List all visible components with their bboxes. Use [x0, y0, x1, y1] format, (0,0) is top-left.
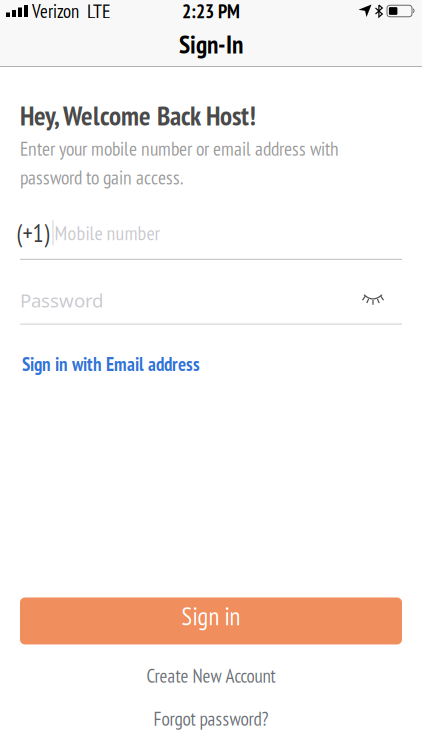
staticText: Forgot password?: [153, 706, 268, 731]
button[interactable]: Sign in with Email address: [0, 352, 200, 376]
staticText: Password: [20, 288, 103, 313]
staticText: Sign in: [181, 600, 240, 632]
staticText: Sign in with Email address: [22, 352, 200, 376]
staticText: Hey, Welcome Back Host!: [20, 98, 256, 133]
staticText: 2:23 PM: [182, 0, 240, 23]
staticText: Sign-In: [179, 28, 243, 60]
staticText: Create New Account: [146, 663, 275, 688]
staticText: Enter your mobile number or email addres…: [20, 136, 339, 190]
button[interactable]: Create New Account: [0, 663, 422, 688]
button[interactable]: Forgot password?: [0, 706, 422, 731]
button[interactable]: (+1): [0, 217, 422, 260]
staticText: Verizon: [32, 0, 79, 23]
staticText: LTE: [87, 0, 111, 24]
staticText: Mobile number: [54, 220, 159, 246]
button[interactable]: Password: [0, 288, 422, 325]
button[interactable]: Sign in: [0, 597, 422, 644]
staticText: (+1): [16, 217, 49, 249]
